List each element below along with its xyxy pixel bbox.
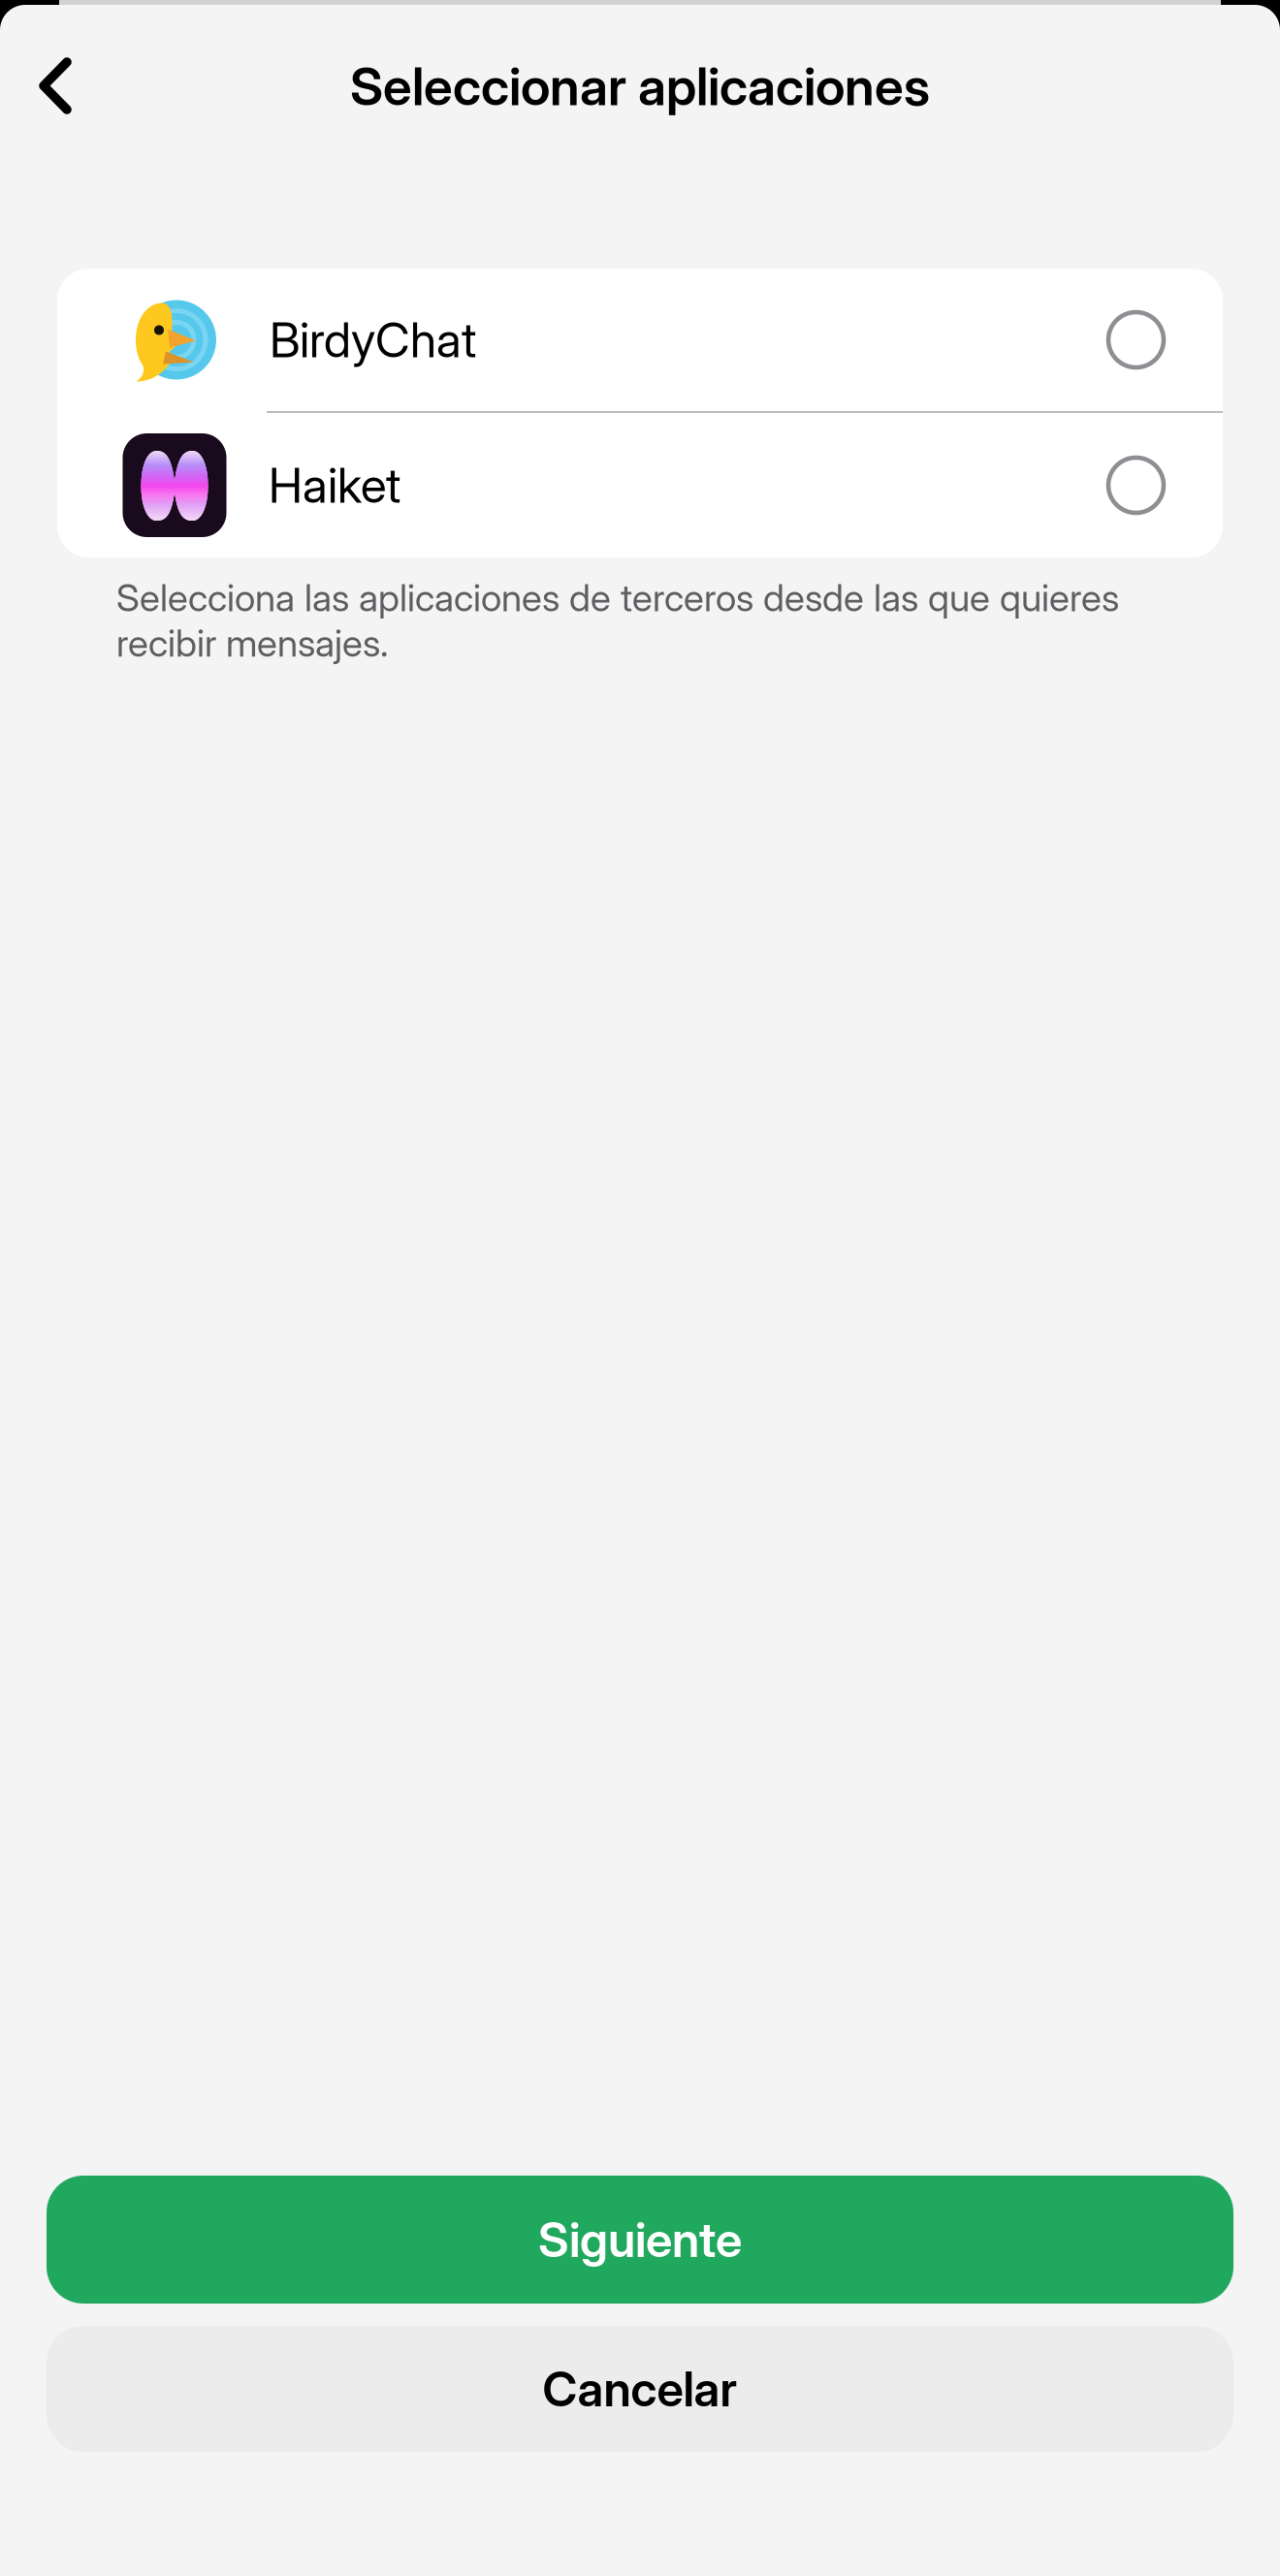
button[interactable]: Cancelar <box>47 2326 1233 2452</box>
staticText: Haiket <box>269 456 400 514</box>
staticText: Seleccionar aplicaciones <box>350 55 930 118</box>
button[interactable]: Siguiente <box>47 2176 1233 2304</box>
button[interactable]: Back <box>0 32 101 141</box>
staticText: Selecciona las aplicaciones de terceros … <box>116 575 1119 666</box>
staticText: Cancelar <box>543 2360 737 2418</box>
staticText: BirdyChat <box>270 311 476 369</box>
staticText: Siguiente <box>538 2211 742 2269</box>
button[interactable]: BirdyChat <box>57 269 1223 411</box>
button[interactable]: Haiket <box>57 413 1223 557</box>
